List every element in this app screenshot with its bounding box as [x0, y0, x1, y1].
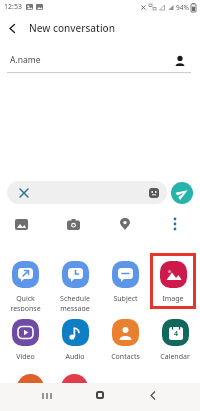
- button[interactable]: Contacts: [100, 319, 150, 369]
- button[interactable]: [150, 391, 156, 400]
- button[interactable]: Schedule: [50, 261, 100, 311]
- button[interactable]: [19, 188, 29, 198]
- staticText: message: [60, 304, 90, 311]
- staticText: Image: [162, 294, 184, 304]
- staticText: 12:53: [4, 2, 22, 12]
- button[interactable]: [96, 391, 104, 399]
- button[interactable]: [171, 182, 193, 204]
- button[interactable]: [8, 24, 17, 33]
- button[interactable]: [0, 213, 50, 235]
- staticText: response: [10, 304, 41, 311]
- staticText: Schedule: [60, 294, 90, 304]
- button[interactable]: Subject: [100, 261, 150, 311]
- button[interactable]: [149, 188, 159, 198]
- staticText: 4: [174, 329, 179, 339]
- button[interactable]: [150, 213, 200, 235]
- staticText: New conversation: [29, 21, 115, 35]
- staticText: A.name: [10, 54, 41, 66]
- staticText: 94%: [176, 3, 189, 12]
- button[interactable]: [174, 55, 187, 68]
- button[interactable]: Quick: [0, 261, 50, 311]
- button[interactable]: [50, 213, 100, 235]
- button[interactable]: [42, 392, 52, 400]
- button[interactable]: Image: [150, 261, 196, 309]
- button[interactable]: 4: [150, 319, 200, 369]
- button[interactable]: Video: [0, 319, 50, 369]
- staticText: Subject: [113, 294, 138, 304]
- staticText: Audio: [65, 352, 85, 362]
- staticText: Calendar: [160, 352, 190, 362]
- button[interactable]: [100, 213, 150, 235]
- button[interactable]: Audio: [50, 319, 100, 369]
- staticText: Video: [16, 352, 35, 362]
- staticText: Contacts: [111, 352, 140, 362]
- staticText: Quick: [16, 294, 35, 304]
